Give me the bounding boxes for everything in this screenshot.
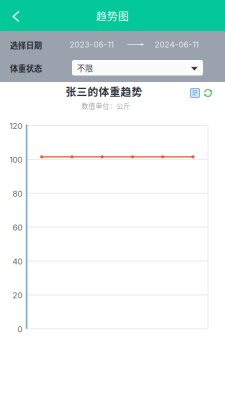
staticText: 趋势图 [96, 8, 129, 23]
staticText: 40 [12, 257, 22, 266]
staticText: 张三的体重趋势 [65, 83, 142, 99]
staticText: 120 [9, 121, 22, 131]
staticText: 2023-06-11 [69, 40, 113, 49]
staticText: 体重状态 [10, 62, 42, 74]
button[interactable]: Data table [190, 88, 200, 98]
button[interactable]: 2023-06-11 [69, 38, 199, 51]
staticText: 0 [17, 324, 22, 334]
button[interactable]: 不限 [72, 60, 203, 75]
staticText: 20 [12, 291, 22, 300]
staticText: 不限 [77, 62, 93, 74]
staticText: 选择日期 [10, 39, 42, 51]
staticText: 80 [12, 189, 22, 199]
button[interactable]: Back [0, 0, 32, 31]
staticText: 60 [12, 223, 22, 232]
button[interactable]: Refresh [203, 88, 213, 98]
staticText: 2024-06-11 [154, 40, 198, 49]
staticText: 100 [9, 155, 22, 165]
staticText: 数值单位：公斤 [81, 101, 130, 110]
